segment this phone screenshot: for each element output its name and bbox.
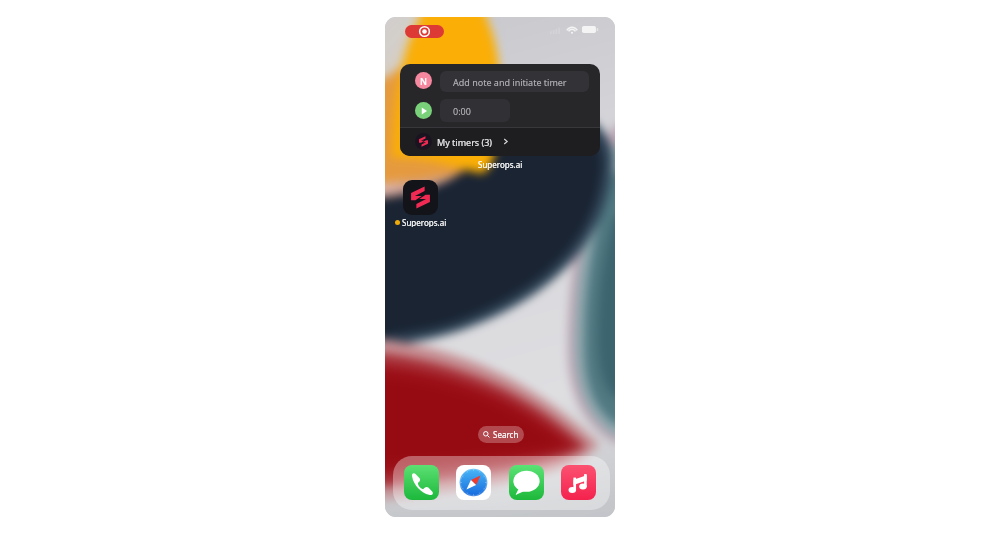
staticText: My timers (3) (437, 136, 493, 148)
staticText: Superops.ai (478, 159, 523, 170)
staticText: N (420, 75, 427, 87)
button[interactable]: Recording (405, 25, 444, 38)
button[interactable]: Music (561, 465, 596, 500)
button[interactable]: Messages (509, 465, 544, 500)
button[interactable]: Phone (404, 465, 439, 500)
button[interactable]: Profile (415, 72, 432, 89)
button[interactable]: Search (478, 426, 524, 443)
button[interactable]: 0:00 (440, 99, 510, 122)
button[interactable]: Superops.ai app (403, 180, 438, 215)
staticText: Search (493, 429, 519, 440)
button[interactable]: Safari (456, 465, 491, 500)
button[interactable] (400, 127, 600, 156)
button[interactable]: Start timer (415, 102, 432, 119)
staticText: Superops.ai (402, 217, 447, 227)
staticText: Add note and initiate timer (453, 76, 567, 88)
staticText: 0:00 (453, 105, 471, 117)
button[interactable]: Add note and initiate timer (440, 71, 589, 92)
